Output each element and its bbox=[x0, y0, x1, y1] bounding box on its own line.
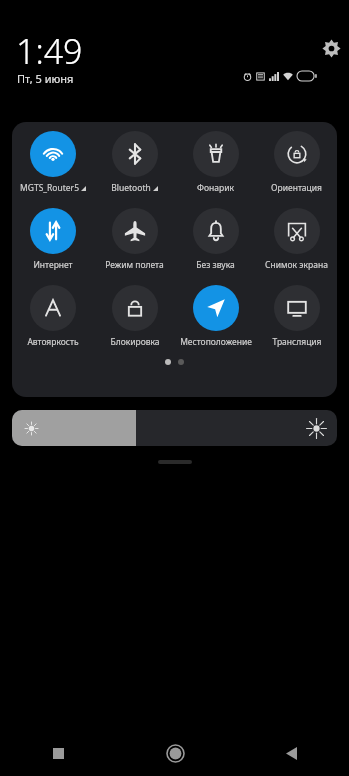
staticText: Фонарик bbox=[197, 182, 234, 194]
staticText: Местоположение bbox=[180, 336, 252, 348]
button[interactable]: Блокировка bbox=[94, 285, 175, 348]
button[interactable]: Трансляция bbox=[256, 285, 337, 348]
button[interactable]: Home bbox=[117, 730, 233, 776]
staticText: Ориентация bbox=[271, 182, 322, 194]
staticText: MGTS_Router5 bbox=[20, 182, 79, 194]
staticText: Интернет bbox=[33, 259, 73, 271]
staticText: Трансляция bbox=[272, 336, 322, 348]
button[interactable]: Recents bbox=[0, 730, 117, 776]
button[interactable]: Back bbox=[233, 730, 349, 776]
button[interactable]: Режим полета bbox=[94, 208, 175, 271]
button[interactable]: Без звука bbox=[175, 208, 256, 271]
staticText: Bluetooth bbox=[111, 182, 151, 194]
button[interactable]: Фонарик bbox=[175, 131, 256, 194]
button[interactable]: Автояркость bbox=[12, 285, 94, 348]
button[interactable]: Ориентация bbox=[256, 131, 337, 194]
staticText: Автояркость bbox=[27, 336, 79, 348]
staticText: Пт, 5 июня bbox=[17, 71, 74, 86]
staticText: Режим полета bbox=[105, 259, 164, 271]
button[interactable]: Bluetooth bbox=[94, 131, 175, 194]
staticText: 1:49 bbox=[16, 28, 83, 74]
button[interactable]: Интернет bbox=[12, 208, 94, 271]
button[interactable]: Местоположение bbox=[175, 285, 256, 348]
button[interactable]: Снимок экрана bbox=[256, 208, 337, 271]
button[interactable]: Brightness bbox=[12, 410, 337, 446]
button[interactable]: MGTS_Router5 bbox=[12, 131, 94, 194]
staticText: Без звука bbox=[196, 259, 235, 271]
staticText: Блокировка bbox=[110, 336, 160, 348]
button[interactable]: Settings bbox=[313, 30, 349, 66]
staticText: Снимок экрана bbox=[265, 259, 328, 271]
